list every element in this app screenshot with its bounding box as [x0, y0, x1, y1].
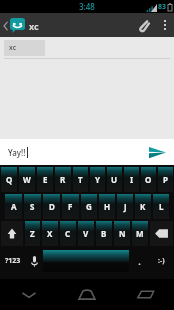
staticText: C	[65, 228, 71, 239]
button[interactable]: J	[117, 194, 133, 219]
staticText: E	[43, 174, 48, 185]
staticText: 83	[158, 2, 167, 12]
staticText: I	[130, 174, 134, 185]
button[interactable]: ?123	[0, 248, 25, 274]
button[interactable]: M	[132, 221, 148, 246]
staticText: F	[68, 201, 73, 212]
staticText: B	[101, 228, 107, 239]
staticText: :-)	[158, 256, 165, 266]
button[interactable]: F	[62, 194, 79, 219]
button[interactable]: W	[19, 167, 35, 192]
staticText: N	[119, 228, 126, 239]
staticText: xc	[29, 20, 39, 32]
button[interactable]: Back to conversations	[0, 18, 43, 33]
button[interactable]: T	[73, 167, 88, 192]
staticText: L	[159, 201, 164, 212]
button[interactable]: X	[42, 221, 58, 246]
staticText: T	[78, 174, 83, 185]
button[interactable]: L	[153, 194, 169, 219]
button[interactable]: Voice input	[25, 248, 43, 274]
button[interactable]: Backspace	[150, 221, 173, 246]
staticText: .	[138, 255, 141, 267]
button[interactable]: R	[55, 167, 71, 192]
staticText: K	[140, 201, 146, 212]
button[interactable]: O	[141, 167, 156, 192]
button[interactable]: D	[43, 194, 60, 219]
staticText: R	[60, 174, 66, 185]
staticText: ?123	[5, 256, 21, 266]
staticText: 3:48	[79, 1, 95, 12]
staticText: J	[124, 201, 127, 212]
button[interactable]: xc	[4, 40, 45, 56]
button[interactable]: Q	[1, 167, 17, 192]
button[interactable]: E	[37, 167, 53, 192]
button[interactable]: Shift	[1, 221, 23, 246]
button[interactable]: .	[129, 248, 149, 274]
staticText: Q	[6, 174, 13, 185]
staticText: V	[83, 228, 89, 239]
button[interactable]: Back	[0, 279, 58, 310]
button[interactable]: Home	[58, 279, 116, 310]
staticText: P	[163, 174, 168, 185]
button[interactable]: More options	[156, 13, 174, 37]
button[interactable]: Recent apps	[116, 279, 174, 310]
button[interactable]: B	[96, 221, 112, 246]
staticText: O	[145, 174, 152, 185]
button[interactable]: A	[5, 194, 22, 219]
button[interactable]: K	[135, 194, 151, 219]
button[interactable]: U	[107, 167, 122, 192]
staticText: S	[30, 201, 35, 212]
button[interactable]: :-)	[149, 248, 174, 274]
staticText: G	[86, 201, 92, 212]
staticText: M	[136, 228, 144, 239]
staticText: Y	[95, 174, 101, 185]
staticText: U	[111, 174, 118, 185]
staticText: W	[23, 174, 31, 185]
staticText: D	[49, 201, 55, 212]
button[interactable]: I	[124, 167, 139, 192]
staticText: A	[11, 201, 17, 212]
button[interactable]: Z	[25, 221, 40, 246]
staticText: xc	[9, 43, 17, 53]
button[interactable]: V	[78, 221, 94, 246]
button[interactable]: Send	[140, 139, 174, 165]
button[interactable]: Attach	[130, 13, 156, 37]
staticText: H	[104, 201, 111, 212]
staticText: X	[47, 228, 53, 239]
button[interactable]: S	[24, 194, 41, 219]
staticText: Yay!!	[8, 147, 26, 158]
staticText: Z	[30, 228, 35, 239]
button[interactable]: N	[114, 221, 130, 246]
button[interactable]: P	[158, 167, 173, 192]
button[interactable]: C	[60, 221, 76, 246]
button[interactable]: Yay!!	[0, 139, 140, 165]
button[interactable]: Y	[90, 167, 105, 192]
button[interactable]: H	[99, 194, 115, 219]
button[interactable]: Space	[43, 250, 129, 272]
button[interactable]: G	[81, 194, 97, 219]
